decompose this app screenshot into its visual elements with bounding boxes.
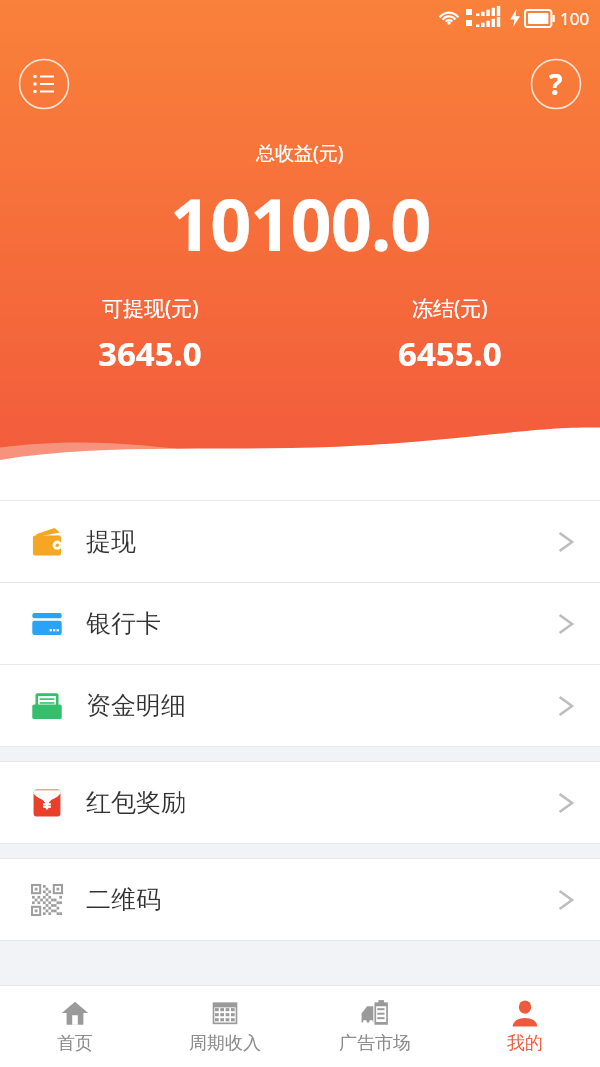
staticText: 首页 [57, 1032, 93, 1055]
button[interactable]: 红包奖励 [0, 762, 600, 843]
staticText: 银行卡 [86, 608, 161, 639]
staticText: 广告市场 [339, 1032, 411, 1055]
staticText: 可提现(元) [102, 294, 199, 323]
staticText: 提现 [86, 526, 136, 557]
staticText: 3645.0 [98, 331, 202, 376]
staticText: 二维码 [86, 884, 161, 915]
button[interactable]: 我的 [450, 986, 600, 1067]
staticText: 红包奖励 [86, 787, 186, 818]
button[interactable]: 二维码 [0, 859, 600, 940]
staticText: 我的 [507, 1032, 543, 1055]
staticText: 周期收入 [189, 1032, 261, 1055]
staticText: 资金明细 [86, 690, 186, 721]
staticText: 6455.0 [398, 331, 502, 376]
staticText: ? [549, 65, 563, 103]
button[interactable]: 银行卡 [0, 583, 600, 664]
button[interactable]: 资金明细 [0, 665, 600, 746]
button[interactable]: Menu [18, 58, 70, 110]
button[interactable]: Help [530, 58, 582, 110]
button[interactable]: 周期收入 [150, 986, 300, 1067]
button[interactable]: 提现 [0, 501, 600, 582]
staticText: 10100.0 [170, 174, 431, 272]
button[interactable]: 广告市场 [300, 986, 450, 1067]
button[interactable]: 首页 [0, 986, 150, 1067]
staticText: 总收益(元) [256, 140, 344, 166]
staticText: 冻结(元) [412, 294, 488, 323]
staticText: 100 [560, 7, 590, 30]
